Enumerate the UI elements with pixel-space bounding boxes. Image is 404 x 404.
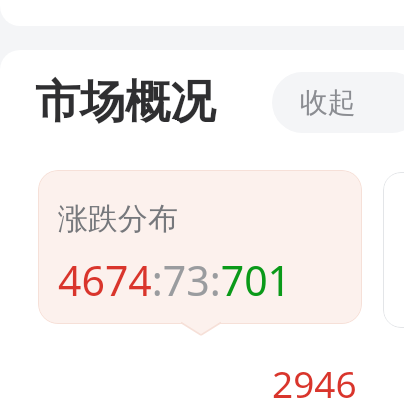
staticText: 4674:73:701 (58, 252, 292, 308)
staticText: 市场概况 (35, 74, 215, 131)
button[interactable] (383, 172, 404, 328)
button[interactable]: 涨跌分布 (38, 170, 362, 336)
staticText: 涨跌分布 (58, 200, 178, 238)
staticText: 2946 (272, 358, 357, 404)
staticText: 收起 (300, 85, 356, 120)
button[interactable]: 收起 (272, 72, 404, 133)
